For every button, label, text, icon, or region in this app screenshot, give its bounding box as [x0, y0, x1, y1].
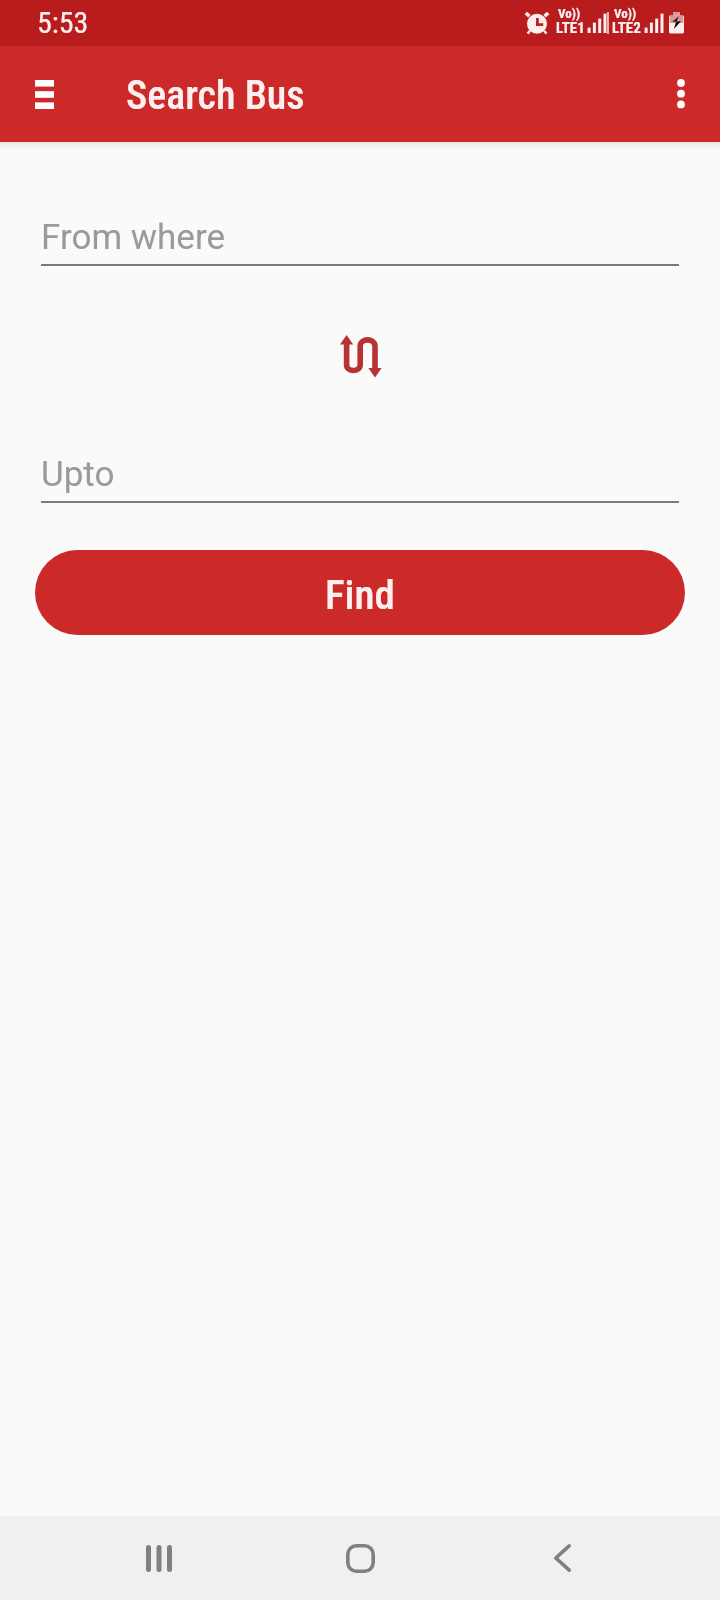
- staticText: LTE2: [612, 19, 641, 37]
- staticText: Upto: [41, 454, 115, 495]
- staticText: From where: [41, 217, 225, 258]
- staticText: LTE1: [556, 19, 585, 37]
- button[interactable]: From where: [41, 217, 679, 266]
- button[interactable]: Recent apps: [117, 1516, 201, 1600]
- button[interactable]: Open navigation menu: [14, 64, 74, 124]
- staticText: Search Bus: [126, 72, 305, 119]
- staticText: Vo)): [558, 6, 581, 21]
- staticText: 5:53: [37, 5, 89, 40]
- staticText: Vo)): [614, 6, 637, 21]
- button[interactable]: More options: [651, 64, 711, 124]
- button[interactable]: Home: [318, 1516, 402, 1600]
- button[interactable]: Back: [520, 1516, 604, 1600]
- button[interactable]: Upto: [41, 454, 679, 503]
- button[interactable]: Find: [35, 550, 685, 635]
- button[interactable]: Swap source and destination: [330, 326, 390, 386]
- staticText: Find: [325, 571, 395, 619]
